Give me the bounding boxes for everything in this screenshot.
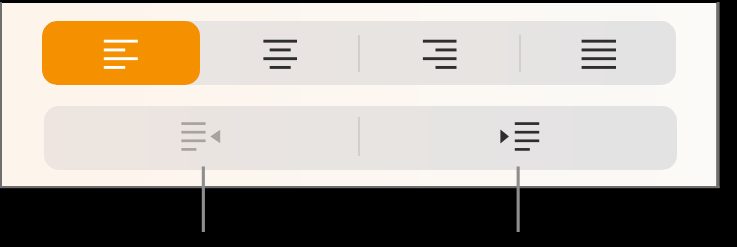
button[interactable]: Increase indent bbox=[361, 106, 677, 170]
button[interactable]: Align left bbox=[42, 21, 200, 85]
button[interactable]: Align right bbox=[361, 21, 519, 85]
button[interactable]: Align center bbox=[200, 21, 358, 85]
button[interactable]: Justify bbox=[522, 21, 676, 85]
button[interactable]: Decrease indent bbox=[44, 106, 358, 170]
